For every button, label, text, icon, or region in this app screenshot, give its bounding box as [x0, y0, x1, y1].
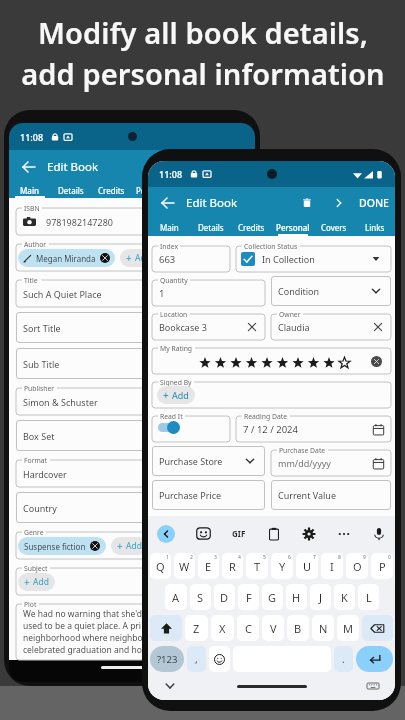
button[interactable]: D	[214, 584, 235, 610]
staticText: F	[246, 590, 252, 605]
button[interactable]: Links	[214, 183, 255, 198]
button[interactable]: Credits	[91, 183, 132, 198]
button[interactable]: Details	[190, 218, 231, 236]
button[interactable]: +	[117, 537, 142, 555]
button[interactable]: Current Value	[271, 480, 391, 510]
button[interactable]: U	[296, 553, 318, 579]
staticText: 1	[166, 554, 169, 561]
button[interactable]: Enter	[356, 646, 393, 672]
button[interactable]: Personal	[132, 183, 173, 198]
button[interactable]: Stickers	[196, 526, 211, 541]
button[interactable]: Sort Title	[16, 312, 248, 343]
button[interactable]: K	[334, 584, 355, 610]
button[interactable]: Location	[152, 310, 265, 340]
button[interactable]: GIF	[232, 528, 246, 539]
button[interactable]: Publisher	[16, 384, 248, 415]
button[interactable]: Settings	[302, 527, 316, 541]
button[interactable]: Back	[18, 156, 40, 178]
button[interactable]: Shift	[150, 615, 182, 641]
button[interactable]: My Rating	[152, 344, 391, 374]
button[interactable]: Back	[157, 525, 175, 543]
button[interactable]: +	[126, 249, 151, 267]
staticText: 3	[214, 554, 217, 561]
button[interactable]: J	[310, 584, 331, 610]
button[interactable]: H	[286, 584, 307, 610]
button[interactable]: Subject	[16, 564, 248, 595]
button[interactable]: ISBN	[16, 204, 248, 235]
button[interactable]: Read It	[152, 412, 230, 442]
button[interactable]: Covers	[313, 218, 354, 236]
button[interactable]: L	[358, 584, 379, 610]
button[interactable]: Z	[185, 615, 208, 641]
button[interactable]: Format	[16, 456, 248, 487]
button[interactable]: Index	[152, 242, 230, 272]
button[interactable]: More	[337, 527, 351, 541]
button[interactable]: F	[238, 584, 259, 610]
button[interactable]: .	[334, 646, 353, 672]
button[interactable]: Delete	[298, 194, 316, 212]
button[interactable]: P	[371, 553, 393, 579]
button[interactable]: N	[312, 615, 334, 641]
button[interactable]: Reading Date	[236, 412, 391, 442]
button[interactable]: Emoji	[209, 646, 230, 672]
button[interactable]: Plot	[16, 600, 248, 660]
button[interactable]: Main	[9, 183, 50, 198]
button[interactable]: Owner	[271, 310, 391, 340]
button[interactable]: R	[222, 553, 243, 579]
button[interactable]: V	[262, 615, 284, 641]
button[interactable]: Voice input	[372, 527, 386, 541]
button[interactable]: Collection Status	[236, 242, 391, 272]
button[interactable]: Genre	[16, 528, 248, 559]
button[interactable]: +	[24, 573, 49, 591]
staticText: GIF	[232, 528, 246, 539]
button[interactable]: Q	[150, 553, 171, 579]
button[interactable]: Purchase Price	[152, 480, 265, 510]
button[interactable]: Signed By	[152, 378, 391, 408]
button[interactable]: Title	[16, 276, 248, 307]
button[interactable]: M	[337, 615, 359, 641]
button[interactable]	[241, 252, 255, 266]
button[interactable]: T	[246, 553, 268, 579]
button[interactable]: Author	[16, 240, 248, 271]
button[interactable]: ,	[187, 646, 206, 672]
button[interactable]: +	[163, 386, 189, 404]
button[interactable]: ?123	[150, 646, 184, 672]
button[interactable]: O	[346, 553, 368, 579]
button[interactable]: Sub Title	[16, 348, 248, 379]
button[interactable]: Clipboard	[267, 527, 281, 541]
button[interactable]: Country	[16, 492, 248, 523]
button[interactable]: Details	[50, 183, 91, 198]
button[interactable]: E	[198, 553, 219, 579]
button[interactable]: DONE	[358, 196, 390, 210]
button[interactable]: I	[321, 553, 343, 579]
staticText: G	[268, 590, 277, 605]
button[interactable]: Covers	[173, 183, 214, 198]
button[interactable]: G	[262, 584, 283, 610]
button[interactable]: Backspace	[362, 615, 393, 641]
button[interactable]: Main	[148, 218, 190, 236]
button[interactable]: Purchase Date	[271, 446, 391, 476]
button[interactable]: Megan Miranda	[23, 249, 110, 267]
button[interactable]: Back	[157, 192, 179, 214]
staticText: 11:08	[20, 131, 44, 143]
button[interactable]: W	[174, 553, 195, 579]
button[interactable]: Links	[354, 218, 395, 236]
staticText: Covers	[321, 222, 347, 233]
button[interactable]: Next	[332, 196, 346, 210]
staticText: B	[294, 621, 302, 636]
button[interactable]: Y	[271, 553, 293, 579]
button[interactable]: Condition	[271, 276, 391, 306]
button[interactable]: B	[287, 615, 309, 641]
button[interactable]: Credits	[231, 218, 272, 236]
button[interactable]: Purchase Store	[152, 446, 265, 476]
button[interactable]: Quantity	[152, 276, 265, 306]
button[interactable]: X	[211, 615, 234, 641]
button[interactable]: Personal	[272, 218, 313, 236]
staticText: T	[254, 559, 261, 574]
button[interactable]: S	[190, 584, 211, 610]
button[interactable]: Suspense fiction	[24, 537, 100, 555]
button[interactable]: Box Set	[16, 420, 248, 451]
button[interactable]: A	[165, 584, 187, 610]
button[interactable]: C	[237, 615, 259, 641]
